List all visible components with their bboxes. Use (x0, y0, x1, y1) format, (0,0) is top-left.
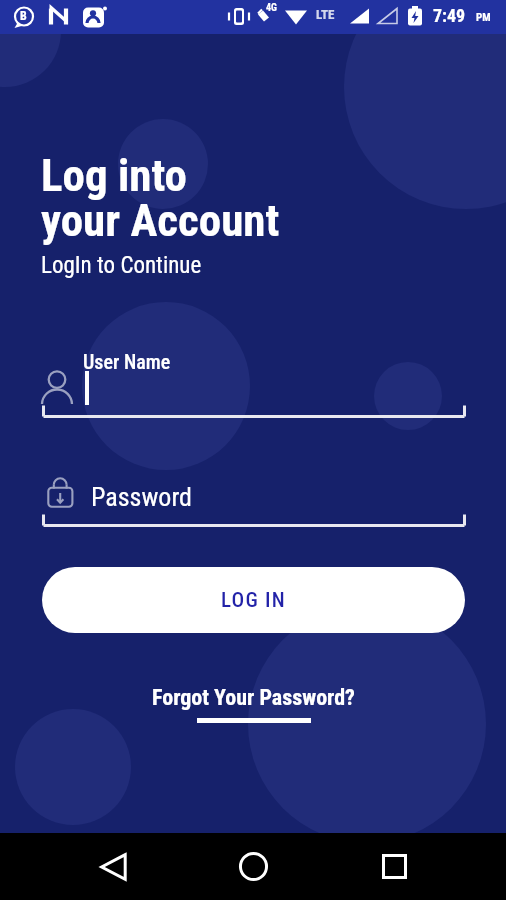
button[interactable]: LOG IN (42, 567, 465, 633)
staticText: Log into your Account (41, 149, 280, 247)
button[interactable]: Back (80, 833, 147, 900)
staticText: 4G (266, 2, 277, 14)
staticText: PM (476, 11, 491, 24)
button[interactable]: Home (220, 833, 287, 900)
button[interactable]: Forgot Your Password? (0, 685, 506, 723)
staticText: Password (91, 482, 192, 512)
staticText: Forgot Your Password? (152, 685, 355, 711)
staticText: 7:49 (433, 5, 466, 26)
staticText: LogIn to Continue (41, 252, 202, 279)
staticText: User Name (83, 350, 171, 373)
button[interactable]: Recent apps (361, 833, 428, 900)
staticText: B (20, 9, 27, 23)
staticText: LTE (316, 7, 335, 22)
staticText: LOG IN (221, 588, 286, 613)
